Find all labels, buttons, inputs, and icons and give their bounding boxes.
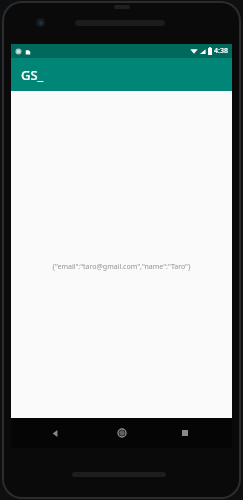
staticText: {"email":"taro@gmail.com","name":"Taro"} — [52, 262, 191, 272]
button[interactable]: Home — [111, 422, 133, 444]
staticText: GS_ — [21, 66, 44, 84]
button[interactable]: Back — [44, 422, 66, 444]
staticText: 4:38 — [214, 46, 228, 56]
button[interactable]: Recent apps — [174, 422, 196, 444]
button[interactable]: GS_ — [11, 58, 232, 91]
